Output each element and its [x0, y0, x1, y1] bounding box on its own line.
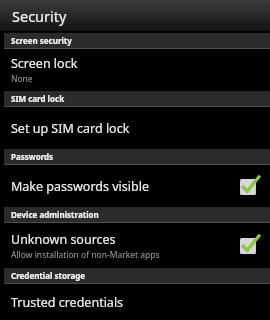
button[interactable]: Set up SIM card lock: [0, 107, 270, 149]
button[interactable]: Toggle Make passwords visible: [240, 176, 261, 197]
button[interactable]: Screen lock: [0, 49, 270, 91]
staticText: None: [11, 73, 33, 85]
staticText: Credential storage: [11, 270, 86, 281]
staticText: Unknown sources: [11, 231, 116, 248]
staticText: Make passwords visible: [11, 178, 149, 195]
staticText: Passwords: [11, 151, 54, 162]
staticText: Security: [12, 6, 67, 26]
staticText: Allow installation of non-Market apps: [11, 249, 160, 261]
button[interactable]: Unknown sources: [0, 223, 270, 268]
staticText: Device administration: [11, 209, 99, 220]
staticText: Screen security: [11, 35, 72, 46]
button[interactable]: Toggle Unknown sources: [240, 235, 261, 256]
button[interactable]: Trusted credentials: [0, 284, 270, 320]
staticText: Set up SIM card lock: [11, 120, 130, 137]
staticText: Screen lock: [11, 55, 78, 72]
button[interactable]: Make passwords visible: [0, 165, 270, 207]
staticText: Trusted credentials: [11, 294, 124, 311]
staticText: SIM card lock: [11, 93, 65, 104]
